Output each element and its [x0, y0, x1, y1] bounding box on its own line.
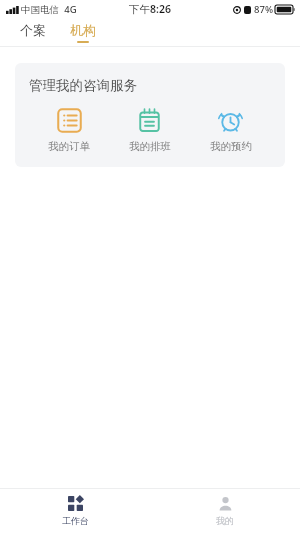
staticText: 工作台	[62, 515, 89, 526]
staticText: 个案	[20, 22, 46, 38]
button[interactable]: 我的排班	[109, 108, 190, 153]
other: 我的预约	[218, 108, 243, 133]
staticText: 我的订单	[48, 140, 90, 153]
staticText: 机构	[70, 22, 96, 38]
staticText: 我的排班	[129, 140, 171, 153]
button[interactable]: 我的订单	[29, 108, 109, 153]
other: 我的订单	[57, 108, 82, 133]
staticText: 管理我的咨询服务	[29, 77, 137, 94]
other: 我的排班	[137, 108, 162, 133]
other: 工作台	[68, 496, 83, 511]
staticText: 我的	[216, 515, 234, 526]
button[interactable]: 工作台	[0, 492, 150, 530]
button[interactable]: 机构	[68, 21, 98, 44]
staticText: 下午8:26	[129, 2, 171, 16]
button[interactable]: 我的	[150, 492, 300, 530]
staticText: 中国电信	[21, 4, 59, 16]
staticText: 87%	[254, 3, 273, 16]
button[interactable]: 个案	[18, 21, 48, 44]
button[interactable]: 我的预约	[190, 108, 271, 153]
staticText: 4G	[64, 3, 77, 16]
staticText: 我的预约	[210, 140, 252, 153]
other: 我的	[218, 496, 233, 511]
